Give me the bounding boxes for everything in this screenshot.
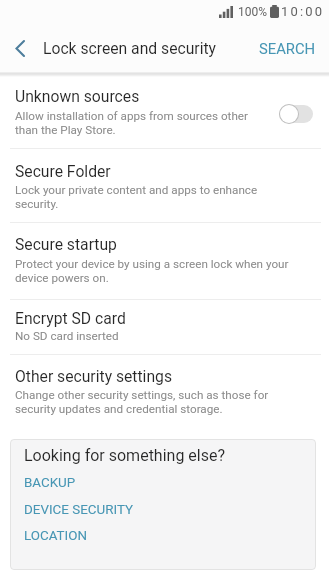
button[interactable]	[0, 24, 40, 72]
staticText: DEVICE SECURITY	[24, 502, 134, 518]
staticText: Looking for something else?	[24, 446, 226, 465]
staticText: Protect your device by using a screen lo…	[15, 257, 289, 285]
staticText: Secure startup	[15, 235, 117, 253]
button[interactable]: SEARCH	[246, 28, 329, 69]
button[interactable]: LOCATION	[24, 528, 88, 544]
button[interactable]: Other security settings	[0, 355, 329, 416]
button[interactable]: BACKUP	[24, 475, 76, 491]
staticText: Encrypt SD card	[15, 309, 126, 327]
staticText: Secure Folder	[15, 162, 111, 180]
staticText: Unknown sources	[15, 87, 140, 105]
staticText: 100%	[238, 5, 268, 19]
staticText: LOCATION	[24, 528, 88, 544]
staticText: No SD card inserted	[15, 329, 119, 343]
staticText: Change other security settings, such as …	[15, 388, 269, 416]
staticText: Lock your private content and apps to en…	[15, 183, 258, 211]
staticText: Allow installation of apps from sources …	[15, 109, 248, 137]
button[interactable]: Secure startup	[0, 223, 329, 299]
button[interactable]: Unknown sources	[0, 77, 329, 148]
button[interactable]	[279, 104, 313, 124]
button[interactable]: Secure Folder	[0, 149, 329, 222]
staticText: Lock screen and security	[43, 39, 217, 57]
staticText: 10:00	[281, 4, 325, 19]
staticText: Other security settings	[15, 367, 173, 385]
staticText: SEARCH	[259, 40, 316, 57]
button[interactable]: DEVICE SECURITY	[24, 502, 134, 518]
button[interactable]: Encrypt SD card	[0, 300, 329, 354]
staticText: BACKUP	[24, 475, 76, 491]
